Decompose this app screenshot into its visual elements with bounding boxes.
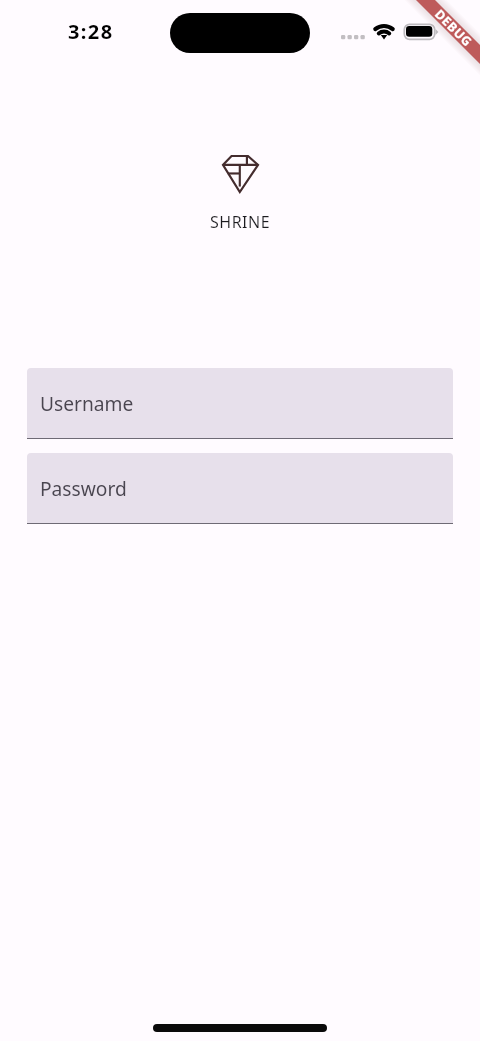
staticText: SHRINE [210, 211, 271, 233]
staticText: Password [40, 475, 127, 501]
staticText: Username [40, 390, 134, 416]
button[interactable]: Password [27, 453, 453, 524]
other: Shrine logo [222, 155, 259, 193]
button[interactable]: Username [27, 368, 453, 439]
staticText: 3:28 [68, 18, 114, 45]
